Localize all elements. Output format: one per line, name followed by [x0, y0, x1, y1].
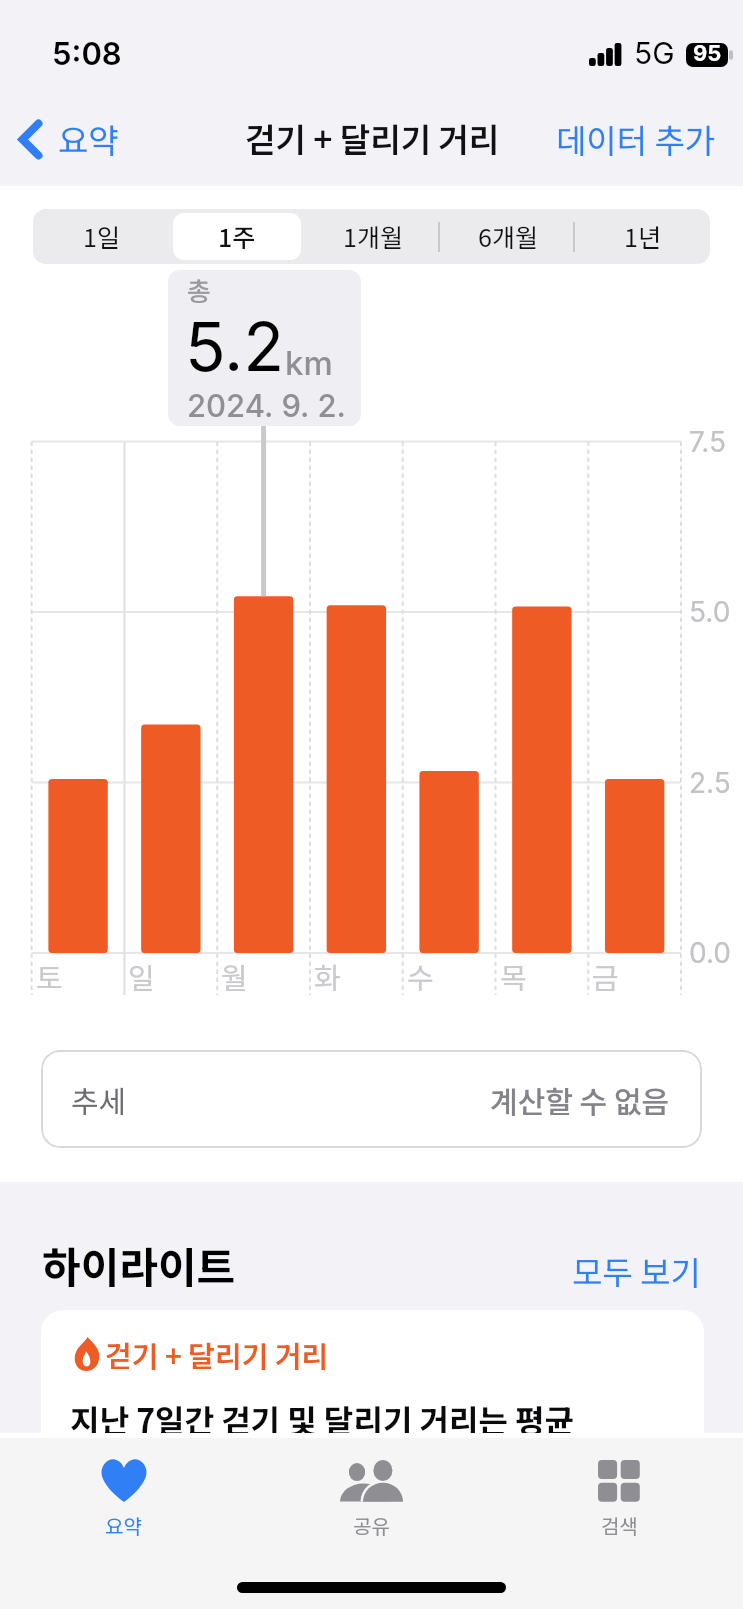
staticText: 6개월	[478, 218, 538, 254]
button[interactable]: 요약	[0, 1438, 247, 1609]
staticText: 목	[500, 955, 527, 997]
button[interactable]: 1개월	[309, 213, 436, 260]
button[interactable]: 검색	[495, 1438, 743, 1609]
staticText: 계산할 수 없음	[490, 1078, 670, 1121]
staticText: 2.5	[689, 766, 731, 800]
button[interactable]: 모두 보기	[572, 1247, 701, 1295]
button[interactable]: 1년	[579, 213, 706, 260]
staticText: 5:08	[52, 35, 122, 73]
staticText: 검색	[601, 1511, 638, 1540]
staticText: 지난 7일간 걷기 및 달리기 거리는 평균	[70, 1396, 575, 1433]
staticText: 월	[221, 955, 248, 997]
staticText: 95	[693, 40, 722, 67]
staticText: 2024. 9. 2.	[187, 387, 346, 425]
staticText: 1개월	[343, 218, 403, 254]
staticText: 총	[187, 271, 211, 309]
button[interactable]: 1주	[173, 213, 301, 260]
staticText: 공유	[353, 1511, 390, 1540]
staticText: 금	[592, 955, 619, 997]
staticText: 걷기 + 달리기 거리	[245, 114, 500, 162]
button[interactable]: 걷기 + 달리기 거리	[41, 1310, 704, 1433]
staticText: 요약	[58, 115, 119, 163]
staticText: 5.2	[185, 306, 285, 387]
staticText: 0.0	[689, 936, 731, 970]
staticText: 1년	[624, 218, 661, 254]
staticText: 1주	[218, 218, 256, 254]
button[interactable]: 1일	[37, 213, 165, 260]
staticText: 추세	[71, 1078, 127, 1121]
staticText: 5.0	[689, 595, 731, 629]
staticText: 하이라이트	[42, 1234, 236, 1295]
staticText: 요약	[105, 1511, 142, 1540]
staticText: 토	[36, 955, 63, 997]
staticText: 7.5	[689, 425, 727, 459]
staticText: 걷기 + 달리기 거리	[105, 1333, 329, 1375]
button[interactable]: 데이터 추가	[546, 115, 743, 163]
staticText: 5G	[634, 35, 675, 71]
staticText: 화	[314, 955, 341, 997]
staticText: 1일	[83, 218, 120, 254]
button[interactable]: 요약	[13, 115, 129, 163]
staticText: km	[285, 343, 333, 383]
button[interactable]: 6개월	[444, 213, 571, 260]
button[interactable]: 추세	[41, 1050, 702, 1148]
staticText: 수	[407, 955, 434, 997]
button[interactable]: 공유	[247, 1438, 495, 1609]
staticText: 일	[128, 955, 155, 997]
